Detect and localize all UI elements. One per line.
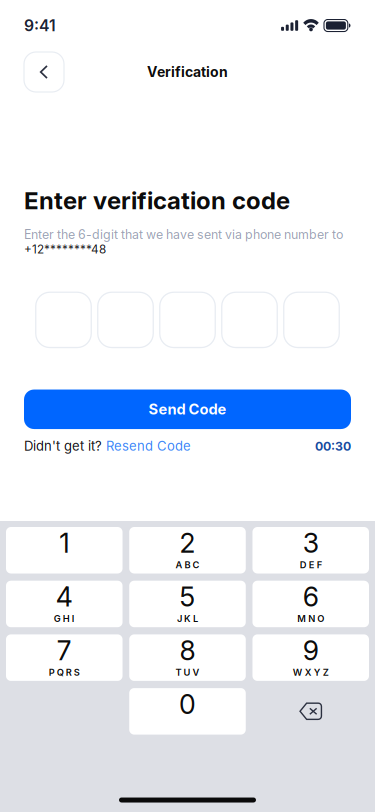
- staticText: 6: [303, 581, 319, 613]
- staticText: 9:41: [24, 16, 56, 35]
- staticText: 5: [179, 581, 195, 613]
- staticText: M N O: [297, 613, 324, 624]
- staticText: +12********48: [24, 242, 106, 256]
- staticText: 0: [179, 688, 196, 720]
- staticText: Send Code: [148, 400, 226, 418]
- button[interactable]: 2: [129, 527, 246, 573]
- staticText: Verification: [147, 63, 228, 80]
- staticText: 2: [179, 527, 195, 559]
- button[interactable]: 1: [6, 527, 122, 573]
- staticText: Enter verification code: [24, 186, 290, 215]
- staticText: G H I: [54, 613, 75, 624]
- staticText: Enter the 6-digit that we have sent via …: [24, 227, 343, 242]
- button[interactable]: 8: [129, 634, 246, 681]
- staticText: 00:30: [315, 439, 351, 454]
- button[interactable]: 9: [252, 634, 369, 681]
- button[interactable]: Delete: [252, 688, 369, 735]
- staticText: 4: [56, 581, 73, 613]
- button[interactable]: 7: [6, 634, 122, 681]
- staticText: J K L: [177, 613, 198, 624]
- staticText: D E F: [300, 559, 322, 571]
- staticText: Resend Code: [106, 438, 191, 454]
- button[interactable]: Resend Code: [106, 438, 191, 454]
- staticText: 9: [303, 634, 319, 667]
- staticText: 8: [179, 634, 195, 667]
- button[interactable]: Send Code: [24, 389, 351, 429]
- button[interactable]: 4: [6, 581, 122, 627]
- button[interactable]: 0: [129, 688, 246, 735]
- button[interactable]: Back: [24, 52, 64, 92]
- staticText: 7: [57, 634, 72, 667]
- staticText: 3: [303, 527, 319, 559]
- staticText: 1: [59, 527, 69, 559]
- staticText: W X Y Z: [293, 667, 329, 678]
- staticText: Didn't get it?: [24, 438, 106, 454]
- button[interactable]: 6: [252, 581, 369, 627]
- staticText: T U V: [175, 667, 199, 678]
- button[interactable]: 5: [129, 581, 246, 627]
- button[interactable]: 3: [252, 527, 369, 573]
- staticText: A B C: [175, 559, 199, 571]
- staticText: P Q R S: [49, 667, 80, 678]
